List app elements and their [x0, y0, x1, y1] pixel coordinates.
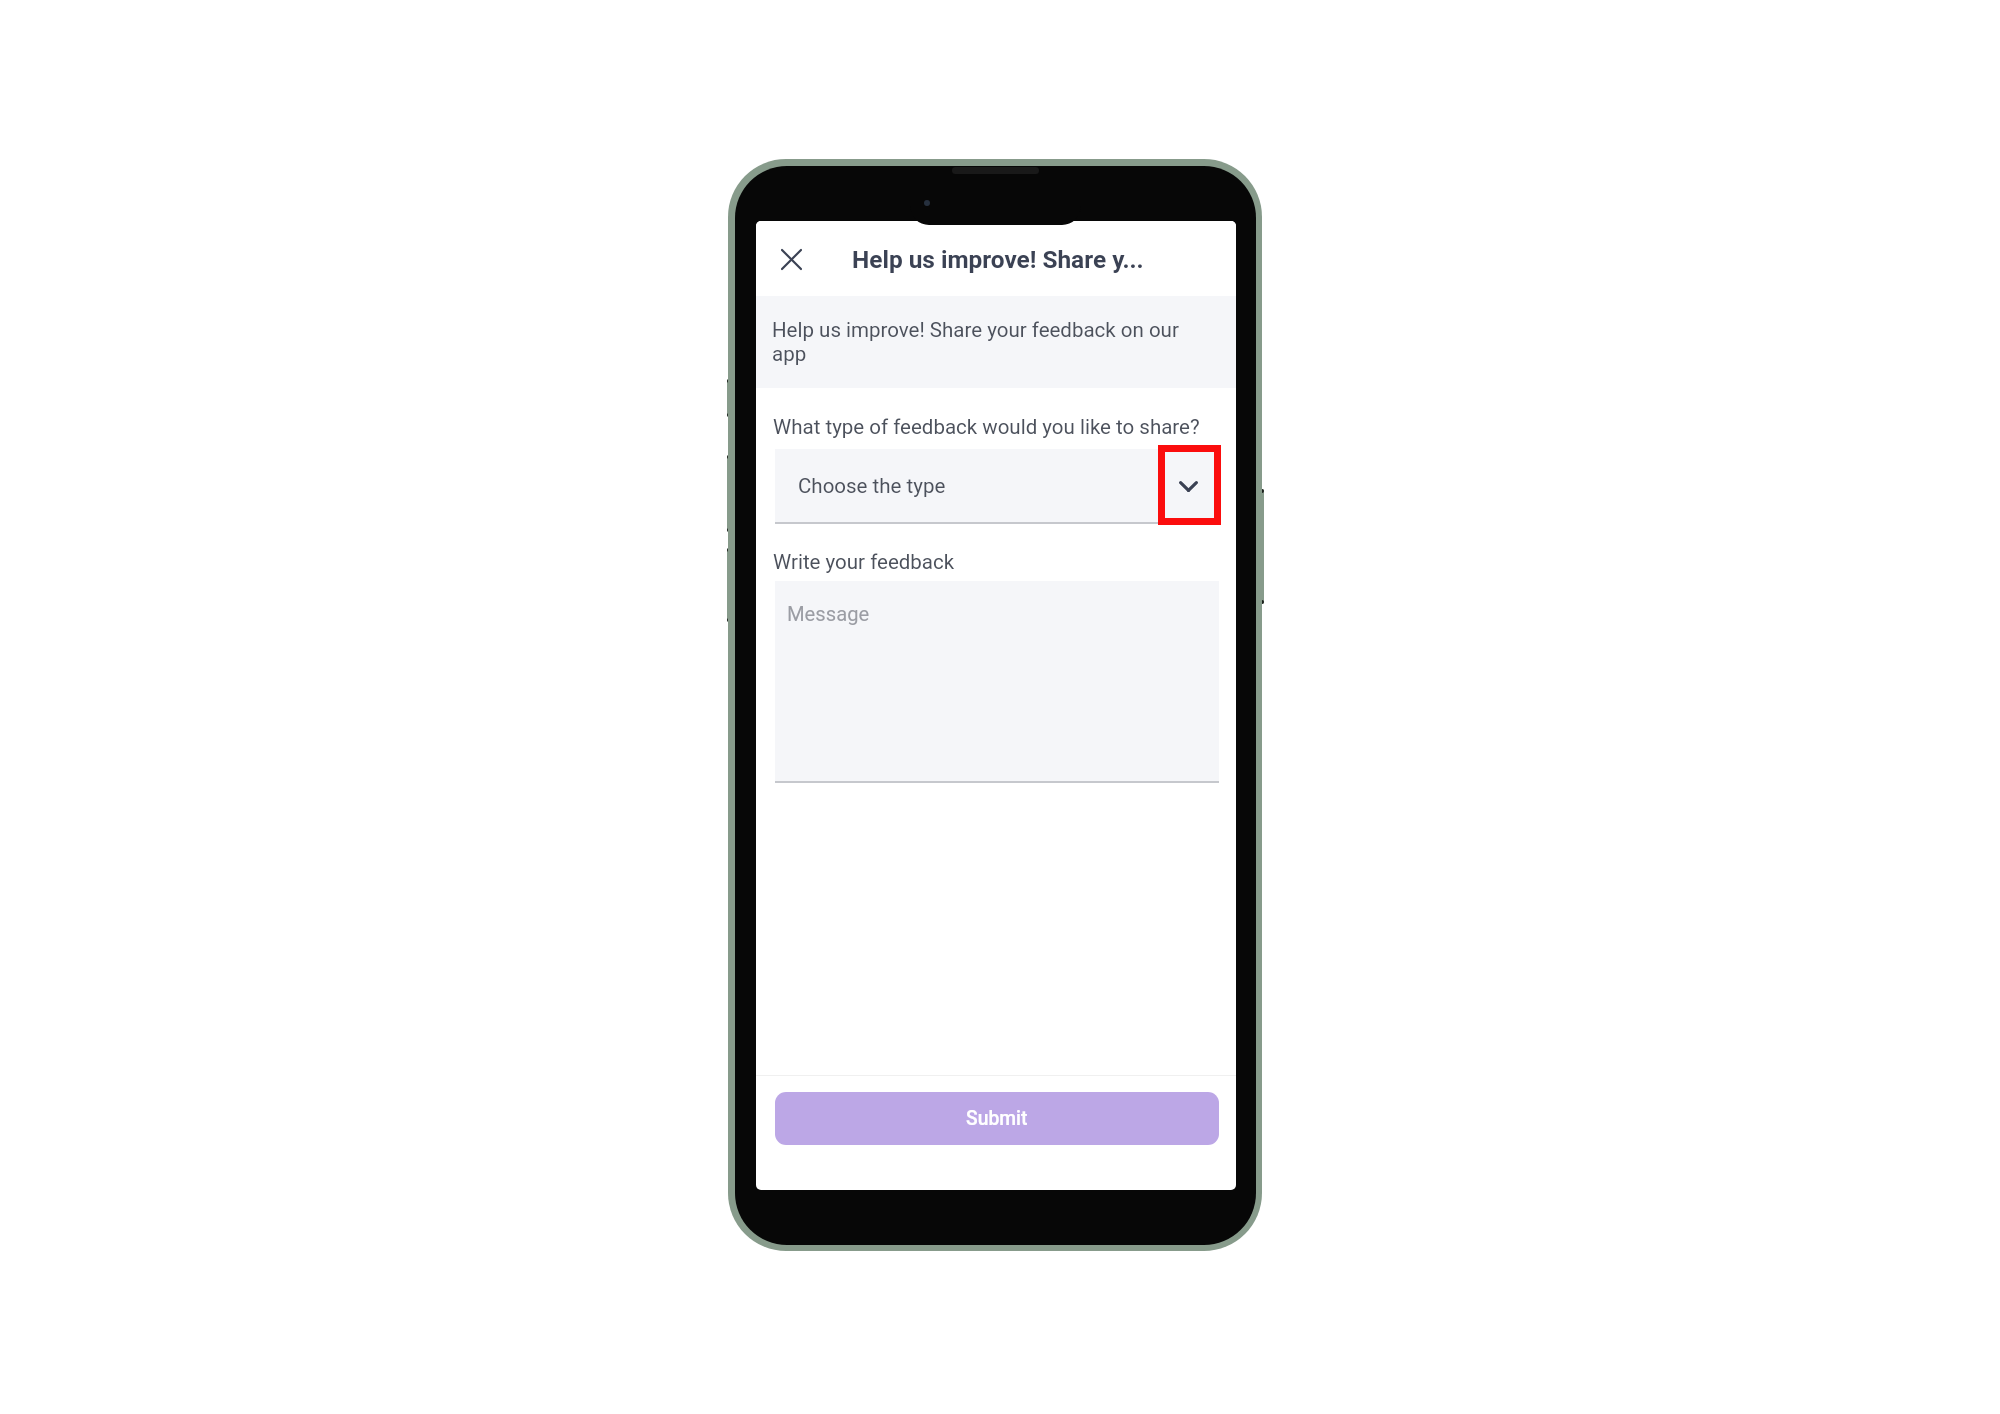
button[interactable]: Open the feedback type dropdown: [1174, 472, 1202, 500]
staticText: Message: [787, 602, 870, 626]
staticText: Write your feedback: [773, 550, 955, 574]
staticText: What type of feedback would you like to …: [773, 415, 1200, 439]
button[interactable]: Choose the type: [775, 449, 1219, 522]
staticText: Help us improve! Share y...: [852, 245, 1144, 274]
button[interactable]: Message: [775, 581, 1219, 781]
staticText: Submit: [966, 1107, 1028, 1130]
button[interactable]: Close: [772, 240, 810, 278]
staticText: Choose the type: [798, 474, 946, 498]
staticText: Help us improve! Share your feedback on …: [772, 318, 1184, 366]
button[interactable]: Submit: [775, 1092, 1219, 1145]
